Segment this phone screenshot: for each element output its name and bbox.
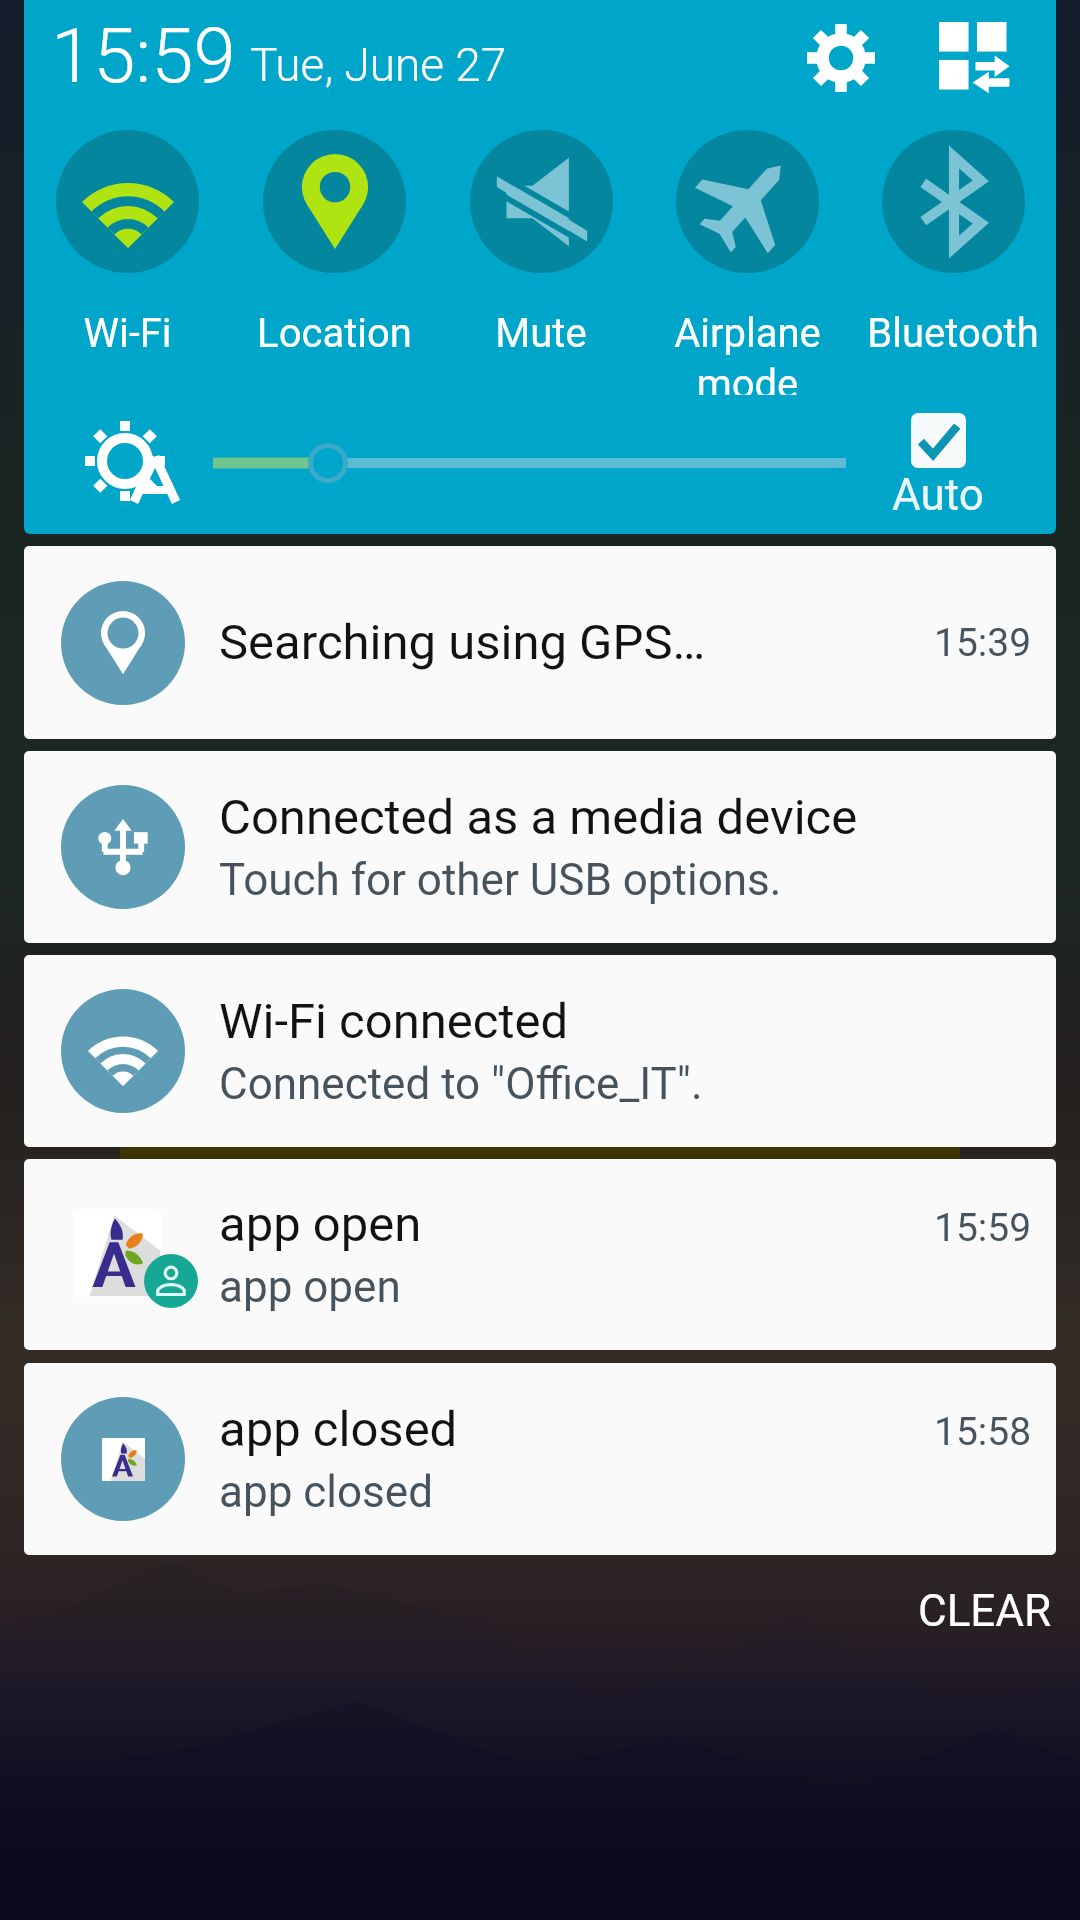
staticText: 15:59 bbox=[934, 1205, 1032, 1251]
staticText: Airplane mode bbox=[674, 310, 821, 395]
button[interactable]: Brightness bbox=[194, 395, 854, 534]
staticText: app open bbox=[219, 1196, 422, 1253]
staticText: app closed bbox=[219, 1401, 458, 1458]
button[interactable]: Mute bbox=[438, 112, 644, 395]
staticText: Searching using GPS… bbox=[219, 614, 706, 671]
button[interactable]: Location bbox=[231, 112, 438, 395]
staticText: Mute bbox=[495, 310, 587, 357]
staticText: Wi-Fi connected bbox=[219, 993, 569, 1050]
button[interactable]: Bluetooth bbox=[850, 112, 1056, 395]
button[interactable]: app closed bbox=[24, 1363, 1056, 1555]
staticText: SIGN IN bbox=[463, 1100, 618, 1152]
staticText: Auto bbox=[892, 469, 984, 521]
staticText: Touch for other USB options. bbox=[219, 854, 782, 906]
staticText: Location bbox=[257, 310, 412, 357]
staticText: Tue, June 27 bbox=[250, 38, 507, 92]
button[interactable]: Connected as a media device bbox=[24, 751, 1056, 943]
button[interactable]: app open bbox=[24, 1159, 1056, 1350]
staticText: 15:39 bbox=[934, 620, 1032, 666]
staticText: app closed bbox=[219, 1466, 433, 1518]
button[interactable]: Airplane mode bbox=[644, 112, 850, 395]
staticText: Bluetooth bbox=[867, 310, 1039, 357]
button[interactable]: Wi-Fi connected bbox=[24, 955, 1056, 1147]
button[interactable]: Wi-Fi bbox=[24, 112, 231, 395]
button[interactable]: Settings bbox=[793, 10, 889, 106]
button[interactable]: Edit quick settings bbox=[927, 10, 1023, 106]
staticText: Connected to "Office_IT". bbox=[219, 1058, 703, 1110]
staticText: app open bbox=[219, 1261, 401, 1313]
staticText: 15:58 bbox=[934, 1409, 1032, 1455]
staticText: Connected as a media device bbox=[219, 789, 858, 846]
staticText: Wi-Fi bbox=[83, 310, 172, 357]
button[interactable]: CLEAR bbox=[910, 1577, 1060, 1645]
staticText: CLEAR bbox=[918, 1585, 1052, 1637]
button[interactable]: Searching using GPS… bbox=[24, 546, 1056, 739]
button[interactable]: 15:59 bbox=[24, 0, 1056, 534]
staticText: 15:59 bbox=[51, 11, 236, 100]
button[interactable]: Auto bbox=[863, 395, 1013, 534]
